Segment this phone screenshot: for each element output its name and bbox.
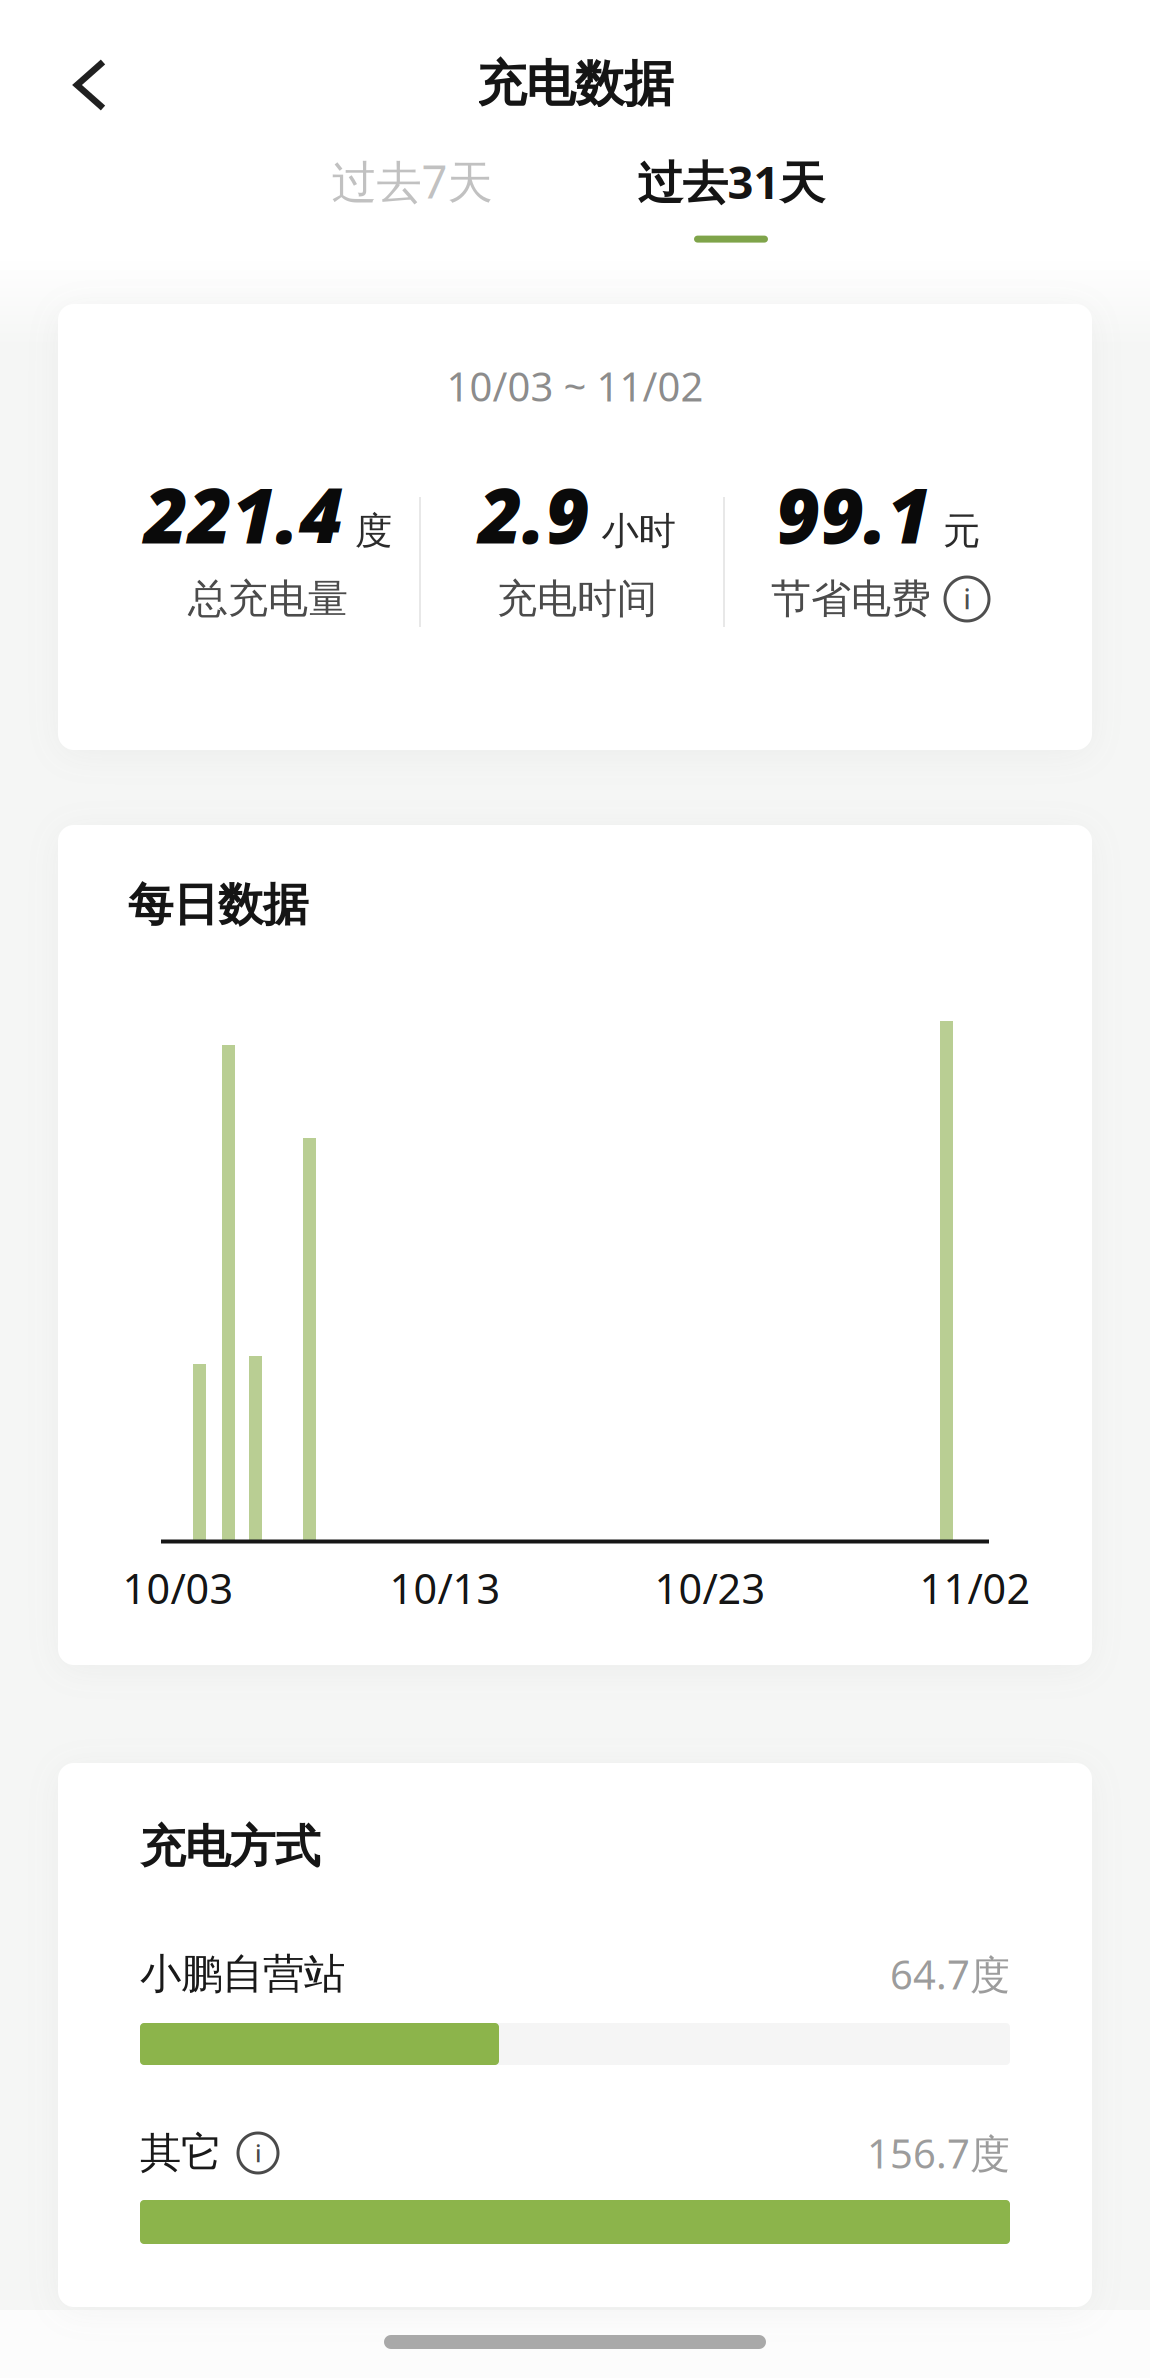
staticText: 节省电费 xyxy=(771,574,931,623)
staticText: 过去31天 xyxy=(637,151,824,212)
staticText: 10/03 xyxy=(122,1561,233,1615)
staticText: 每日数据 xyxy=(128,877,308,933)
staticText: i xyxy=(255,2137,261,2169)
staticText: 充电数据 xyxy=(477,54,673,114)
button[interactable]: i xyxy=(222,2133,278,2173)
staticText: 156.7度 xyxy=(867,2126,1010,2179)
staticText: 11/02 xyxy=(919,1561,1030,1615)
staticText: 元 xyxy=(943,508,980,554)
staticText: 10/23 xyxy=(654,1561,765,1615)
staticText: 度 xyxy=(355,508,392,554)
staticText: 64.7度 xyxy=(890,1947,1010,2000)
button[interactable] xyxy=(70,58,110,112)
staticText: i xyxy=(963,581,970,617)
staticText: 充电时间 xyxy=(497,574,657,623)
staticText: 过去7天 xyxy=(331,151,492,211)
staticText: 其它 xyxy=(140,2128,222,2178)
staticText: 99.1 xyxy=(776,463,931,564)
staticText: 10/13 xyxy=(389,1561,500,1615)
staticText: 10/03 ~ 11/02 xyxy=(446,359,703,412)
staticText: 小鹏自营站 xyxy=(140,1949,345,1999)
staticText: 2.9 xyxy=(478,463,589,564)
button[interactable]: 节省电费 xyxy=(771,574,989,623)
staticText: 小时 xyxy=(601,508,675,554)
button[interactable]: 过去7天 xyxy=(331,151,492,211)
staticText: 充电方式 xyxy=(140,1819,320,1875)
button[interactable]: 过去31天 xyxy=(637,151,824,243)
staticText: 221.4 xyxy=(144,463,343,564)
staticText: 总充电量 xyxy=(188,574,348,623)
